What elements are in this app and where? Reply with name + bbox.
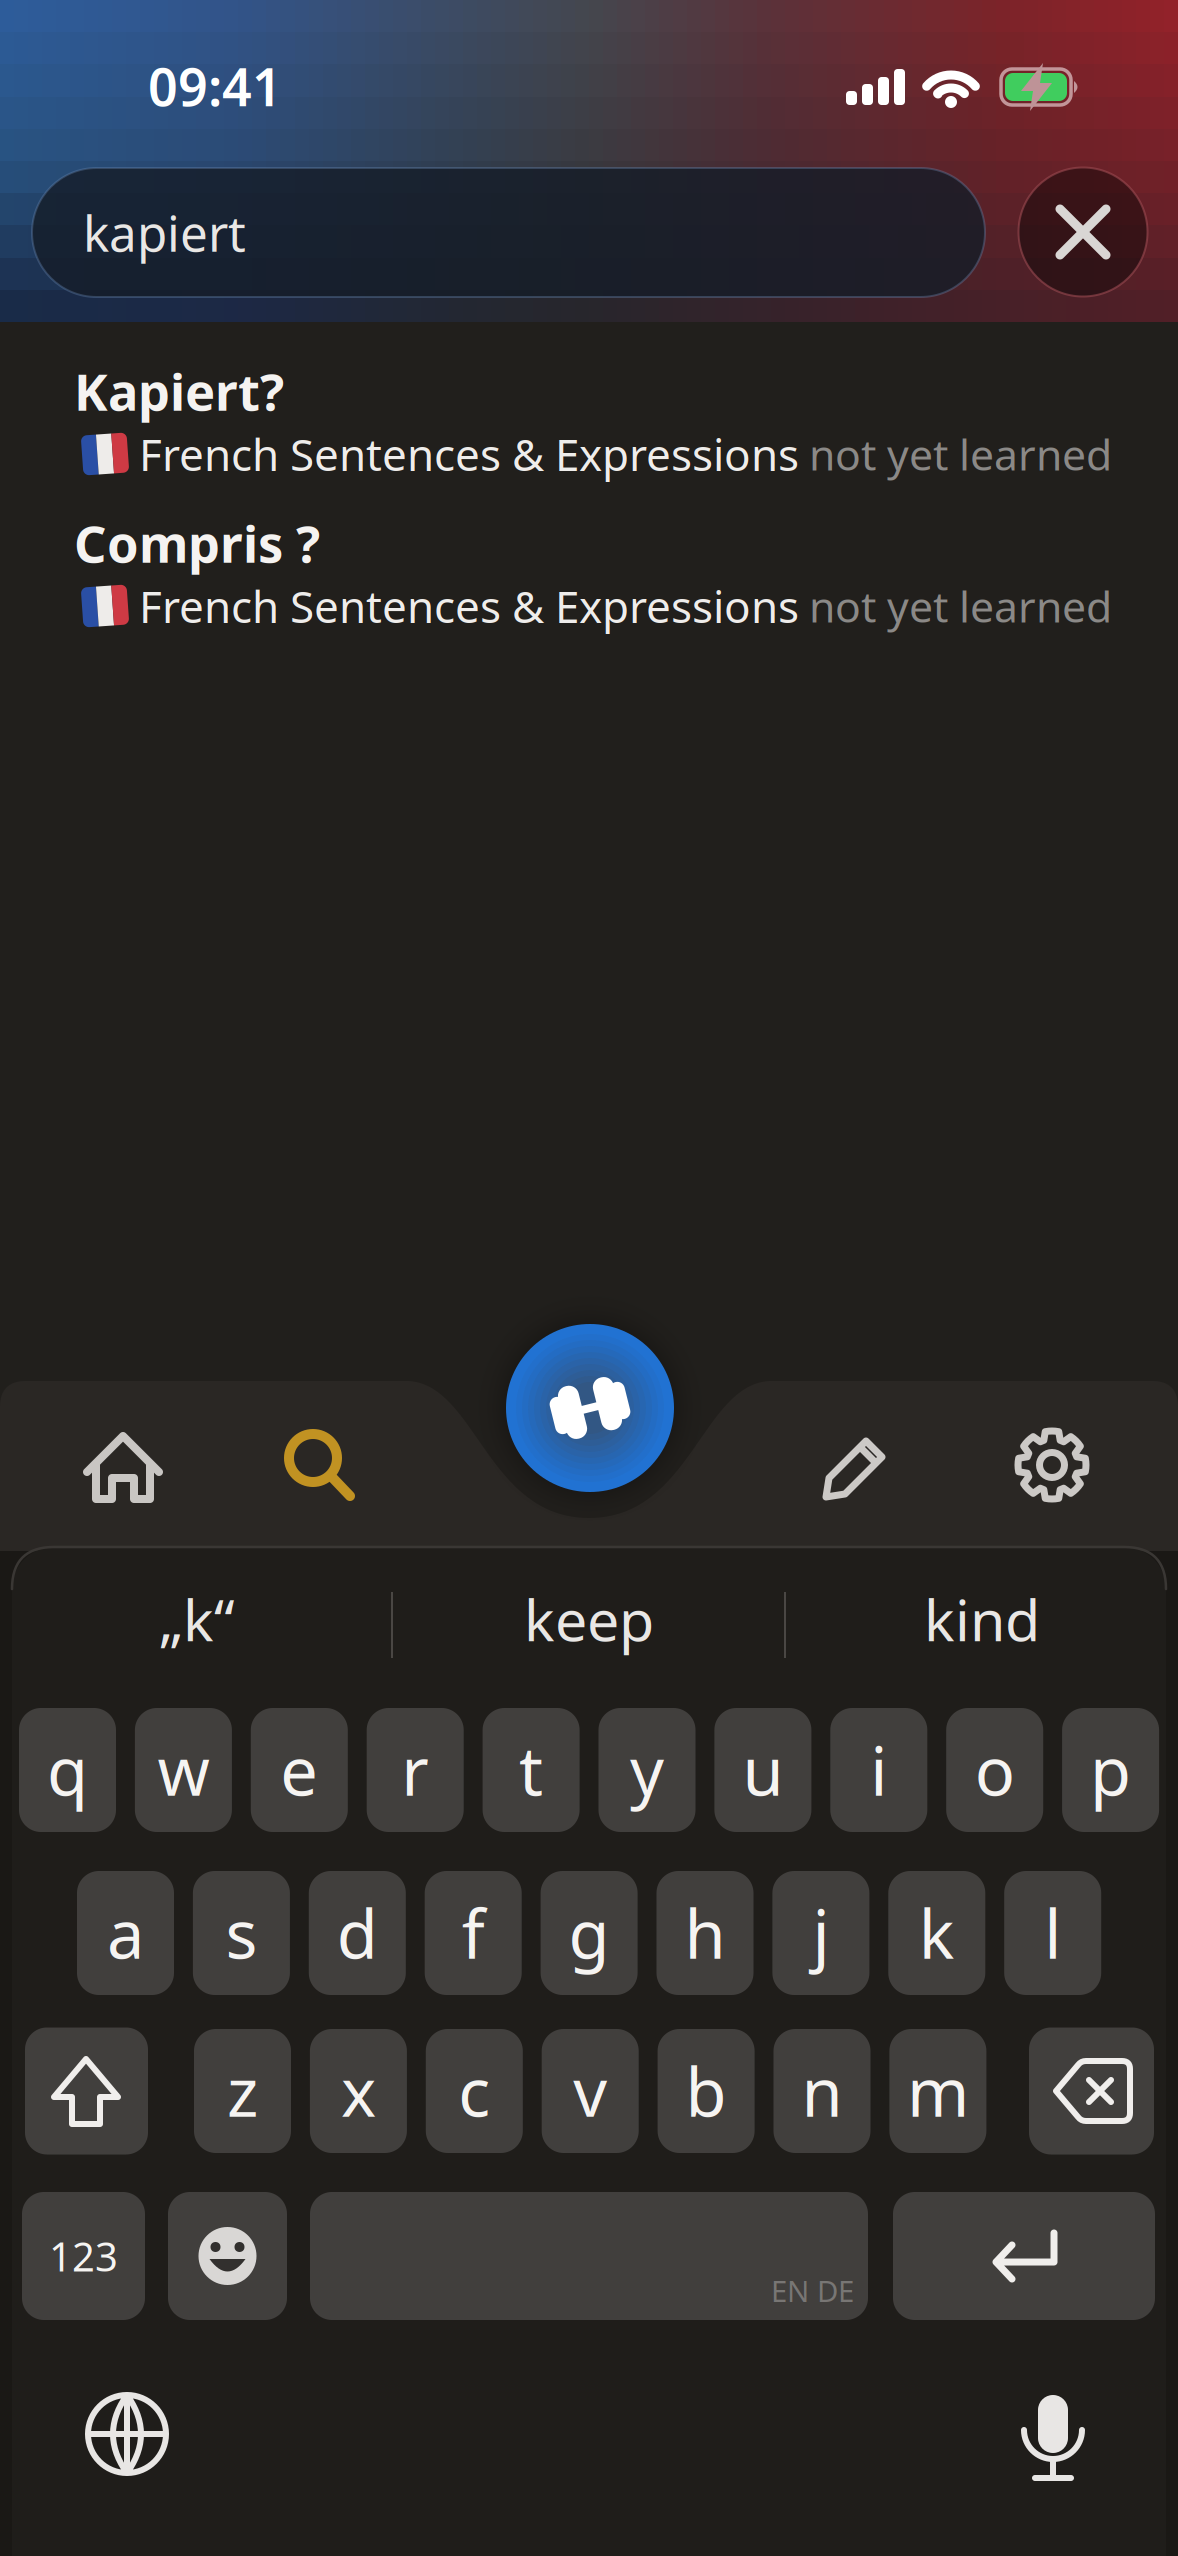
button[interactable]: Numbers xyxy=(22,2192,145,2320)
button[interactable]: j xyxy=(772,1871,869,1995)
staticText: h xyxy=(684,1889,725,1977)
button[interactable]: „k“ xyxy=(7,1564,387,1674)
button[interactable]: d xyxy=(309,1871,406,1995)
staticText: n xyxy=(801,2047,842,2135)
button[interactable]: y xyxy=(598,1708,695,1832)
staticText: k xyxy=(919,1889,955,1977)
button[interactable]: c xyxy=(426,2029,523,2153)
button[interactable]: u xyxy=(714,1708,811,1832)
button[interactable]: keep xyxy=(399,1564,779,1674)
staticText: keep xyxy=(524,1581,654,1657)
button[interactable]: z xyxy=(194,2029,291,2153)
button[interactable]: Kapiert? xyxy=(0,365,1178,499)
staticText: r xyxy=(401,1726,429,1814)
button[interactable]: n xyxy=(773,2029,870,2153)
staticText: d xyxy=(337,1889,378,1977)
staticText: French Sentences & Expressions xyxy=(139,425,799,483)
button[interactable]: Dictate xyxy=(993,2376,1113,2496)
button[interactable]: q xyxy=(19,1708,116,1832)
staticText: m xyxy=(907,2047,969,2135)
staticText: b xyxy=(686,2047,727,2135)
button[interactable]: f xyxy=(425,1871,522,1995)
staticText: w xyxy=(157,1726,209,1814)
button[interactable]: l xyxy=(1004,1871,1101,1995)
button[interactable]: a xyxy=(77,1871,174,1995)
staticText: g xyxy=(569,1889,610,1977)
button[interactable]: w xyxy=(135,1708,232,1832)
button[interactable]: r xyxy=(367,1708,464,1832)
staticText: EN DE xyxy=(771,2271,854,2310)
button[interactable]: Return xyxy=(893,2192,1155,2320)
button[interactable]: t xyxy=(483,1708,580,1832)
button[interactable]: Search xyxy=(260,1406,380,1526)
staticText: a xyxy=(107,1889,144,1977)
staticText: s xyxy=(225,1889,257,1977)
staticText: j xyxy=(812,1889,829,1977)
staticText: Compris ? xyxy=(74,509,320,577)
staticText: 09:41 xyxy=(148,51,282,121)
staticText: p xyxy=(1090,1726,1131,1814)
staticText: z xyxy=(227,2047,258,2135)
staticText: u xyxy=(742,1726,783,1814)
staticText: f xyxy=(462,1889,485,1977)
staticText: t xyxy=(519,1726,543,1814)
button[interactable]: x xyxy=(310,2029,407,2153)
button[interactable]: Practice xyxy=(506,1324,674,1492)
button[interactable]: Space xyxy=(310,2192,868,2320)
staticText: q xyxy=(47,1726,88,1814)
button[interactable]: Next keyboard xyxy=(67,2374,187,2494)
button[interactable]: kapiert xyxy=(32,168,985,297)
staticText: c xyxy=(458,2047,490,2135)
button[interactable]: i xyxy=(830,1708,927,1832)
button[interactable]: Shift xyxy=(25,2027,148,2154)
button[interactable]: b xyxy=(658,2029,755,2153)
button[interactable]: Home xyxy=(63,1407,183,1527)
staticText: l xyxy=(1044,1889,1061,1977)
staticText: e xyxy=(280,1726,318,1814)
button[interactable]: m xyxy=(889,2029,986,2153)
staticText: „k“ xyxy=(159,1581,235,1657)
staticText: v xyxy=(573,2047,607,2135)
button[interactable]: kind xyxy=(792,1564,1172,1674)
button[interactable]: v xyxy=(542,2029,639,2153)
button[interactable]: g xyxy=(541,1871,638,1995)
staticText: i xyxy=(870,1726,887,1814)
staticText: not yet learned xyxy=(809,426,1112,482)
button[interactable]: s xyxy=(193,1871,290,1995)
staticText: x xyxy=(341,2047,376,2135)
button[interactable]: k xyxy=(888,1871,985,1995)
button[interactable]: Edit xyxy=(796,1406,916,1526)
button[interactable]: p xyxy=(1062,1708,1159,1832)
button[interactable]: Compris ? xyxy=(0,517,1178,651)
staticText: y xyxy=(630,1726,664,1814)
staticText: French Sentences & Expressions xyxy=(139,577,799,635)
button[interactable]: o xyxy=(946,1708,1043,1832)
button[interactable]: Delete xyxy=(1029,2027,1154,2154)
staticText: Kapiert? xyxy=(74,357,284,425)
staticText: kind xyxy=(924,1581,1040,1657)
button[interactable]: e xyxy=(251,1708,348,1832)
staticText: not yet learned xyxy=(809,578,1112,634)
button[interactable]: Clear search xyxy=(1018,167,1147,296)
button[interactable]: Emoji xyxy=(168,2192,287,2320)
staticText: o xyxy=(975,1726,1015,1814)
button[interactable]: Settings xyxy=(992,1405,1112,1525)
staticText: 123 xyxy=(49,2229,118,2282)
button[interactable]: h xyxy=(656,1871,753,1995)
staticText: kapiert xyxy=(83,200,246,265)
